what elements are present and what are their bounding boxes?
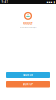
staticText: SIGN IN [23, 73, 33, 77]
staticText: SIGN UP [22, 82, 33, 86]
button[interactable]: SIGN UP [6, 81, 50, 87]
staticText: ▪▪▪ ▮ [46, 0, 54, 3]
staticText: Order food you love, fast [20, 26, 36, 28]
staticText: FOODLY [23, 22, 33, 25]
button[interactable]: SIGN IN [6, 72, 50, 78]
staticText: 9:41 [2, 0, 9, 4]
